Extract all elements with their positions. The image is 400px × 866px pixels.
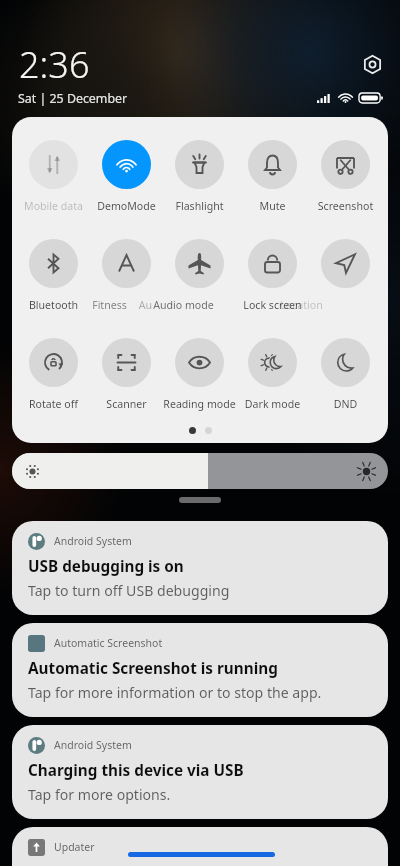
staticText: Updater — [54, 840, 95, 854]
button[interactable]: Flashlight — [163, 140, 236, 213]
staticText: Reading mode — [163, 397, 236, 411]
button[interactable]: Android System — [12, 725, 388, 819]
staticText: Dark mode — [236, 397, 309, 411]
button[interactable]: Lock screen — [236, 239, 309, 312]
button[interactable]: Mute — [236, 140, 309, 213]
button[interactable]: Bluetooth — [17, 239, 90, 312]
staticText: Sat | 25 December — [18, 90, 128, 107]
staticText: Automatic Screenshot is running — [28, 658, 278, 679]
staticText: USB debugging is on — [28, 556, 184, 577]
button[interactable]: Android System — [12, 521, 388, 615]
staticText: Lock screen — [236, 298, 309, 312]
staticText: Mobile data — [17, 199, 90, 213]
button[interactable]: Au — [163, 239, 236, 312]
button[interactable]: Updater — [12, 827, 388, 866]
staticText: Audio mode — [147, 298, 220, 312]
staticText: 2:36 — [19, 40, 90, 89]
staticText: Screenshot — [309, 199, 382, 213]
staticText: Charging this device via USB — [28, 760, 244, 781]
staticText: Automatic Screenshot — [54, 636, 163, 650]
staticText: Tap to turn off USB debugging — [28, 581, 230, 600]
staticText: DemoMode — [90, 199, 163, 213]
button[interactable]: Reading mode — [163, 338, 236, 411]
staticText: Tap for more information or to stop the … — [28, 683, 322, 702]
staticText: Android System — [54, 534, 132, 548]
button[interactable]: Fitness — [90, 239, 163, 312]
staticText: Scanner — [90, 397, 163, 411]
button[interactable]: DemoMode — [90, 140, 163, 213]
staticText: Fitness — [73, 298, 146, 312]
staticText: DND — [309, 397, 382, 411]
button[interactable]: DND — [309, 338, 382, 411]
staticText: Flashlight — [163, 199, 236, 213]
button[interactable]: Dark mode — [236, 338, 309, 411]
staticText: Rotate off — [17, 397, 90, 411]
button[interactable]: Mobile data — [17, 140, 90, 213]
staticText: Mute — [236, 199, 309, 213]
staticText: Tap for more options. — [28, 785, 171, 804]
button[interactable]: Brightness — [12, 453, 388, 489]
button[interactable]: Location — [309, 239, 382, 312]
staticText: Au — [109, 298, 182, 312]
button[interactable]: Scanner — [90, 338, 163, 411]
button[interactable]: Automatic Screenshot — [12, 623, 388, 717]
button[interactable]: Settings — [362, 54, 383, 75]
staticText: Android System — [54, 738, 132, 752]
button[interactable]: Screenshot — [309, 140, 382, 213]
button[interactable]: Rotate off — [17, 338, 90, 411]
staticText: Location — [265, 298, 338, 312]
staticText: Bluetooth — [17, 298, 90, 312]
